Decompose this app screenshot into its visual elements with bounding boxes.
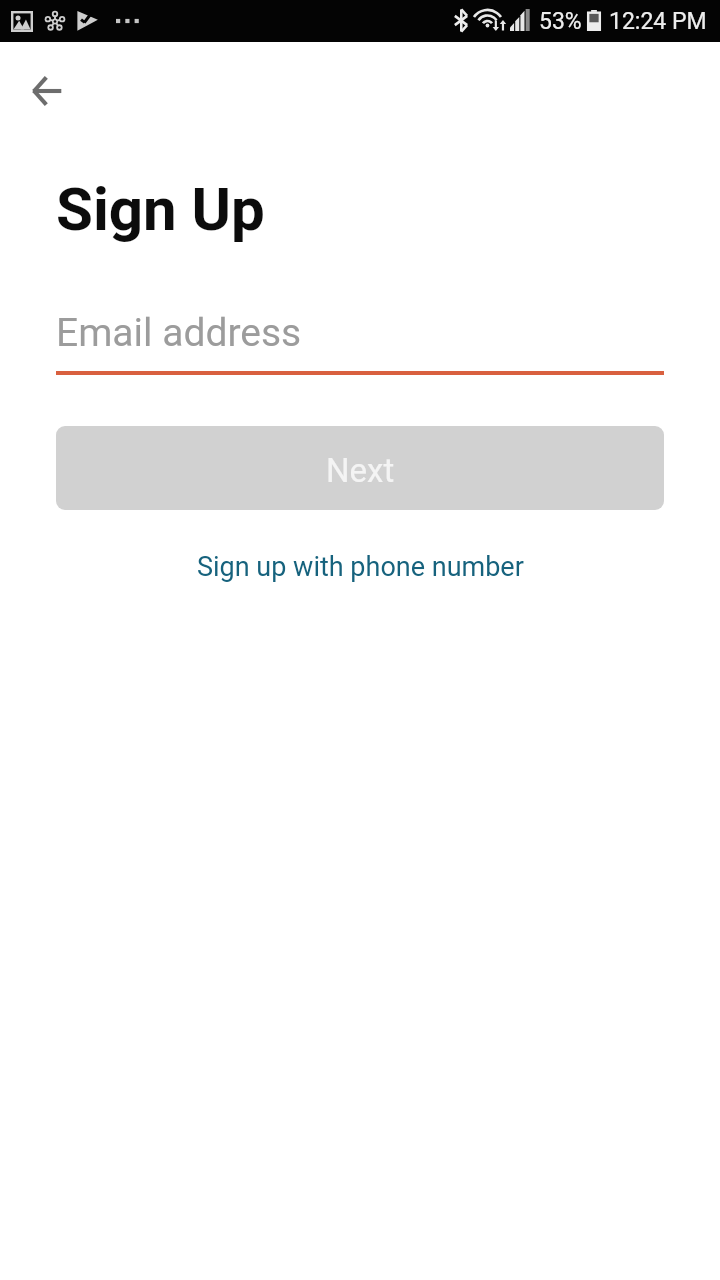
staticText: 53% [539,8,582,35]
staticText: Next [326,451,395,490]
button[interactable]: Sign up with phone number [179,542,542,592]
staticText: Email address [56,310,302,356]
staticText: 12:24 PM [609,8,707,35]
staticText: Sign up with phone number [197,551,524,583]
button[interactable]: Next [56,426,664,510]
staticText: Sign Up [56,174,265,244]
button[interactable]: Back [8,52,86,130]
button[interactable]: Email address [56,300,664,375]
